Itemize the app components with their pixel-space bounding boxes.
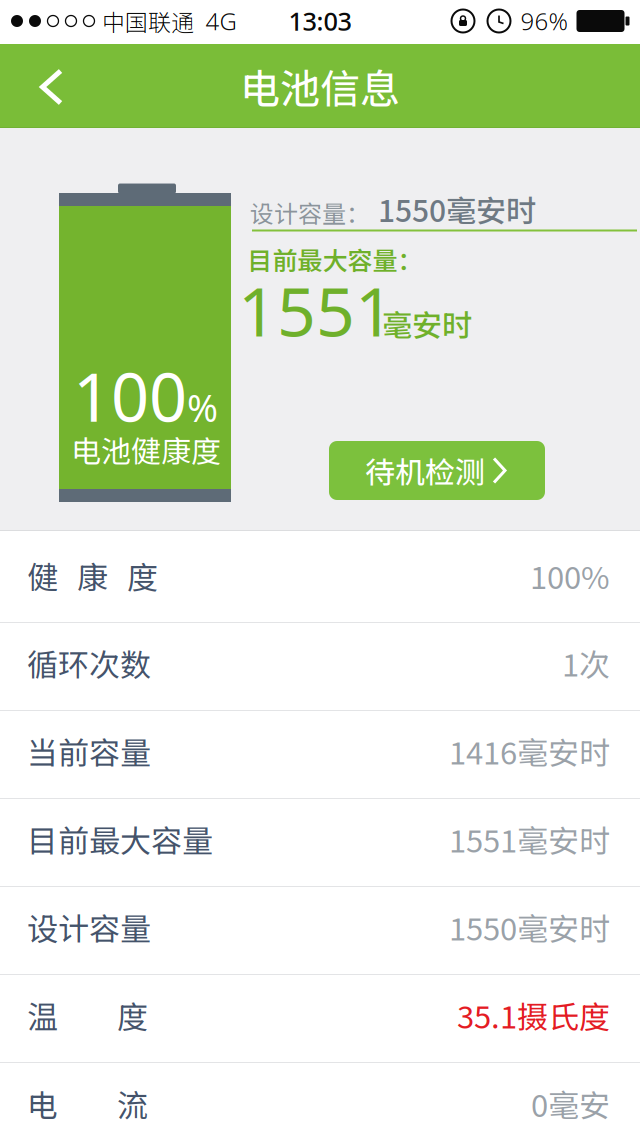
staticText: 100%	[530, 553, 610, 598]
staticText: %	[187, 383, 218, 432]
staticText: 设计容量：	[250, 195, 370, 230]
staticText: 100	[73, 352, 187, 440]
staticText: 1次	[562, 641, 610, 685]
button[interactable]: Back	[33, 62, 81, 110]
staticText: 电池健康度	[71, 428, 221, 471]
staticText: 健	[27, 553, 58, 598]
staticText: 35.1摄氏度	[457, 993, 610, 1037]
staticText: 0毫安	[531, 1081, 610, 1126]
staticText: 当前容量	[27, 729, 151, 773]
staticText: 1550毫安时	[378, 187, 536, 231]
staticText: 待机检测	[365, 449, 485, 492]
staticText: 96%	[520, 5, 567, 37]
staticText: 4G	[205, 5, 236, 37]
staticText: 电池信息	[240, 57, 400, 115]
staticText: 设计容量	[27, 905, 151, 949]
staticText: 中国联通	[102, 4, 194, 38]
staticText: 1551	[238, 265, 394, 355]
staticText: 循环次数	[27, 641, 151, 685]
staticText: 毫安时	[382, 302, 472, 345]
staticText: 温	[27, 993, 58, 1037]
button[interactable]: 待机检测	[329, 441, 545, 500]
staticText: 度	[117, 993, 148, 1037]
staticText: 康	[77, 553, 108, 598]
staticText: 度	[127, 553, 158, 598]
staticText: 流	[117, 1081, 148, 1126]
staticText: 目前最大容量	[27, 817, 213, 861]
staticText: 电	[27, 1081, 58, 1126]
staticText: 目前最大容量：	[247, 241, 422, 277]
staticText: 13:03	[288, 4, 351, 38]
staticText: 1551毫安时	[449, 817, 610, 861]
staticText: 1550毫安时	[449, 905, 610, 949]
staticText: 1416毫安时	[449, 729, 610, 773]
